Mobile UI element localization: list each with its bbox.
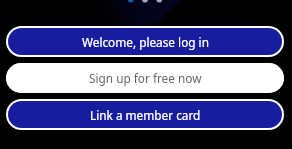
staticText: Welcome, please log in: [82, 34, 209, 50]
button[interactable]: Welcome, please log in: [8, 28, 282, 55]
button[interactable]: Link a member card: [8, 101, 282, 128]
button[interactable]: Sign up for free now: [6, 63, 284, 93]
staticText: Sign up for free now: [89, 70, 202, 86]
staticText: Link a member card: [90, 107, 201, 123]
